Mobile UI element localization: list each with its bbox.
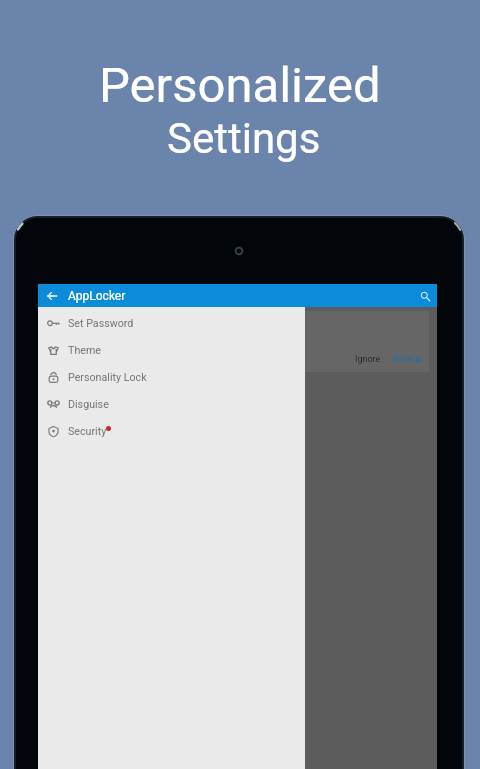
staticText: Settings: [167, 114, 321, 163]
staticText: Ignore: [355, 354, 381, 365]
button[interactable]: Disguise: [38, 391, 305, 418]
button[interactable]: Ignore: [353, 354, 383, 365]
staticText: Disguise: [68, 398, 109, 411]
staticText: Security: [68, 425, 107, 438]
staticText: Theme: [68, 344, 101, 357]
button[interactable]: Backup: [391, 354, 425, 365]
button[interactable]: Set Password: [38, 310, 305, 337]
staticText: Backup: [393, 354, 423, 365]
button[interactable]: Search: [413, 284, 436, 307]
button[interactable]: Back: [45, 289, 59, 303]
button[interactable]: Personality Lock: [38, 364, 305, 391]
staticText: AppLocker: [68, 289, 126, 303]
staticText: Personalized: [99, 57, 381, 114]
button[interactable]: Security: [38, 418, 305, 445]
staticText: Set Password: [68, 317, 134, 330]
staticText: Personality Lock: [68, 371, 147, 384]
button[interactable]: Theme: [38, 337, 305, 364]
